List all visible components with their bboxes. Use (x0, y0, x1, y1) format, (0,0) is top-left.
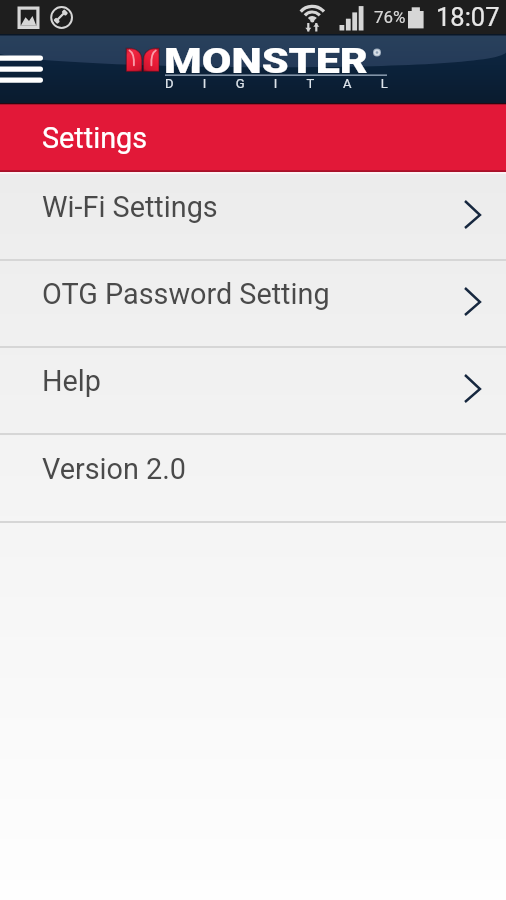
staticText: 18:07 (436, 2, 500, 32)
button[interactable]: Help (0, 346, 506, 434)
staticText: 76% (374, 7, 406, 27)
staticText: Help (42, 364, 101, 398)
button[interactable]: Version 2.0 (0, 434, 506, 522)
button[interactable]: Wi-Fi Settings (0, 172, 506, 260)
staticText: Version 2.0 (42, 452, 187, 486)
staticText: MONSTER (164, 40, 368, 81)
button[interactable]: Open navigation menu (0, 34, 52, 103)
staticText: DIGITAL (165, 76, 418, 91)
staticText: OTG Password Setting (42, 277, 330, 311)
button[interactable]: OTG Password Setting (0, 259, 506, 348)
staticText: Wi-Fi Settings (42, 190, 218, 224)
staticText: Settings (42, 121, 148, 155)
